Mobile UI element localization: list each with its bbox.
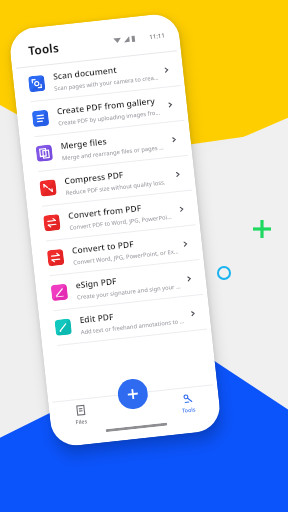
button[interactable]: Tools [160,390,216,416]
staticText: Scan pages with your camera to create PD… [54,73,160,93]
staticText: Add text or freehand annotations to your… [80,317,187,336]
button[interactable]: Convert from PDF [31,190,196,243]
button[interactable]: Scan document [16,51,181,104]
staticText: Merge and rearrange files or pages withi… [61,143,168,162]
staticText: Tools [181,405,196,414]
staticText: Convert PDF to Word, JPG, PowerPoint, or… [69,212,175,232]
staticText: Convert Word, JPG, PowerPoint, or Excel … [73,247,179,267]
button[interactable]: Edit PDF [42,295,207,347]
staticText: Create your signature and sign your PDF. [77,282,183,301]
staticText: Create PDF from gallery [56,95,156,117]
button[interactable]: Files [53,402,109,428]
button[interactable]: Compress PDF [27,156,192,208]
button[interactable]: eSign PDF [39,260,203,312]
staticText: Edit PDF [79,311,115,326]
staticText: Convert from PDF [68,202,142,222]
staticText: Files [75,417,88,425]
button[interactable]: Convert to PDF [35,225,200,277]
staticText: Scan document [52,64,117,83]
staticText: Convert to PDF [71,238,134,257]
staticText: Tools [27,39,60,58]
button[interactable]: Create PDF from gallery [20,86,185,138]
staticText: Reduce PDF size without quality loss. [65,178,167,197]
button[interactable]: Create [116,377,149,411]
staticText: Merge files [60,135,108,152]
staticText: 11:11 [149,31,166,41]
staticText: Create PDF by uploading images from gall… [58,108,164,127]
staticText: eSign PDF [75,275,118,292]
staticText: Compress PDF [64,169,125,187]
button[interactable]: Merge files [24,121,188,173]
